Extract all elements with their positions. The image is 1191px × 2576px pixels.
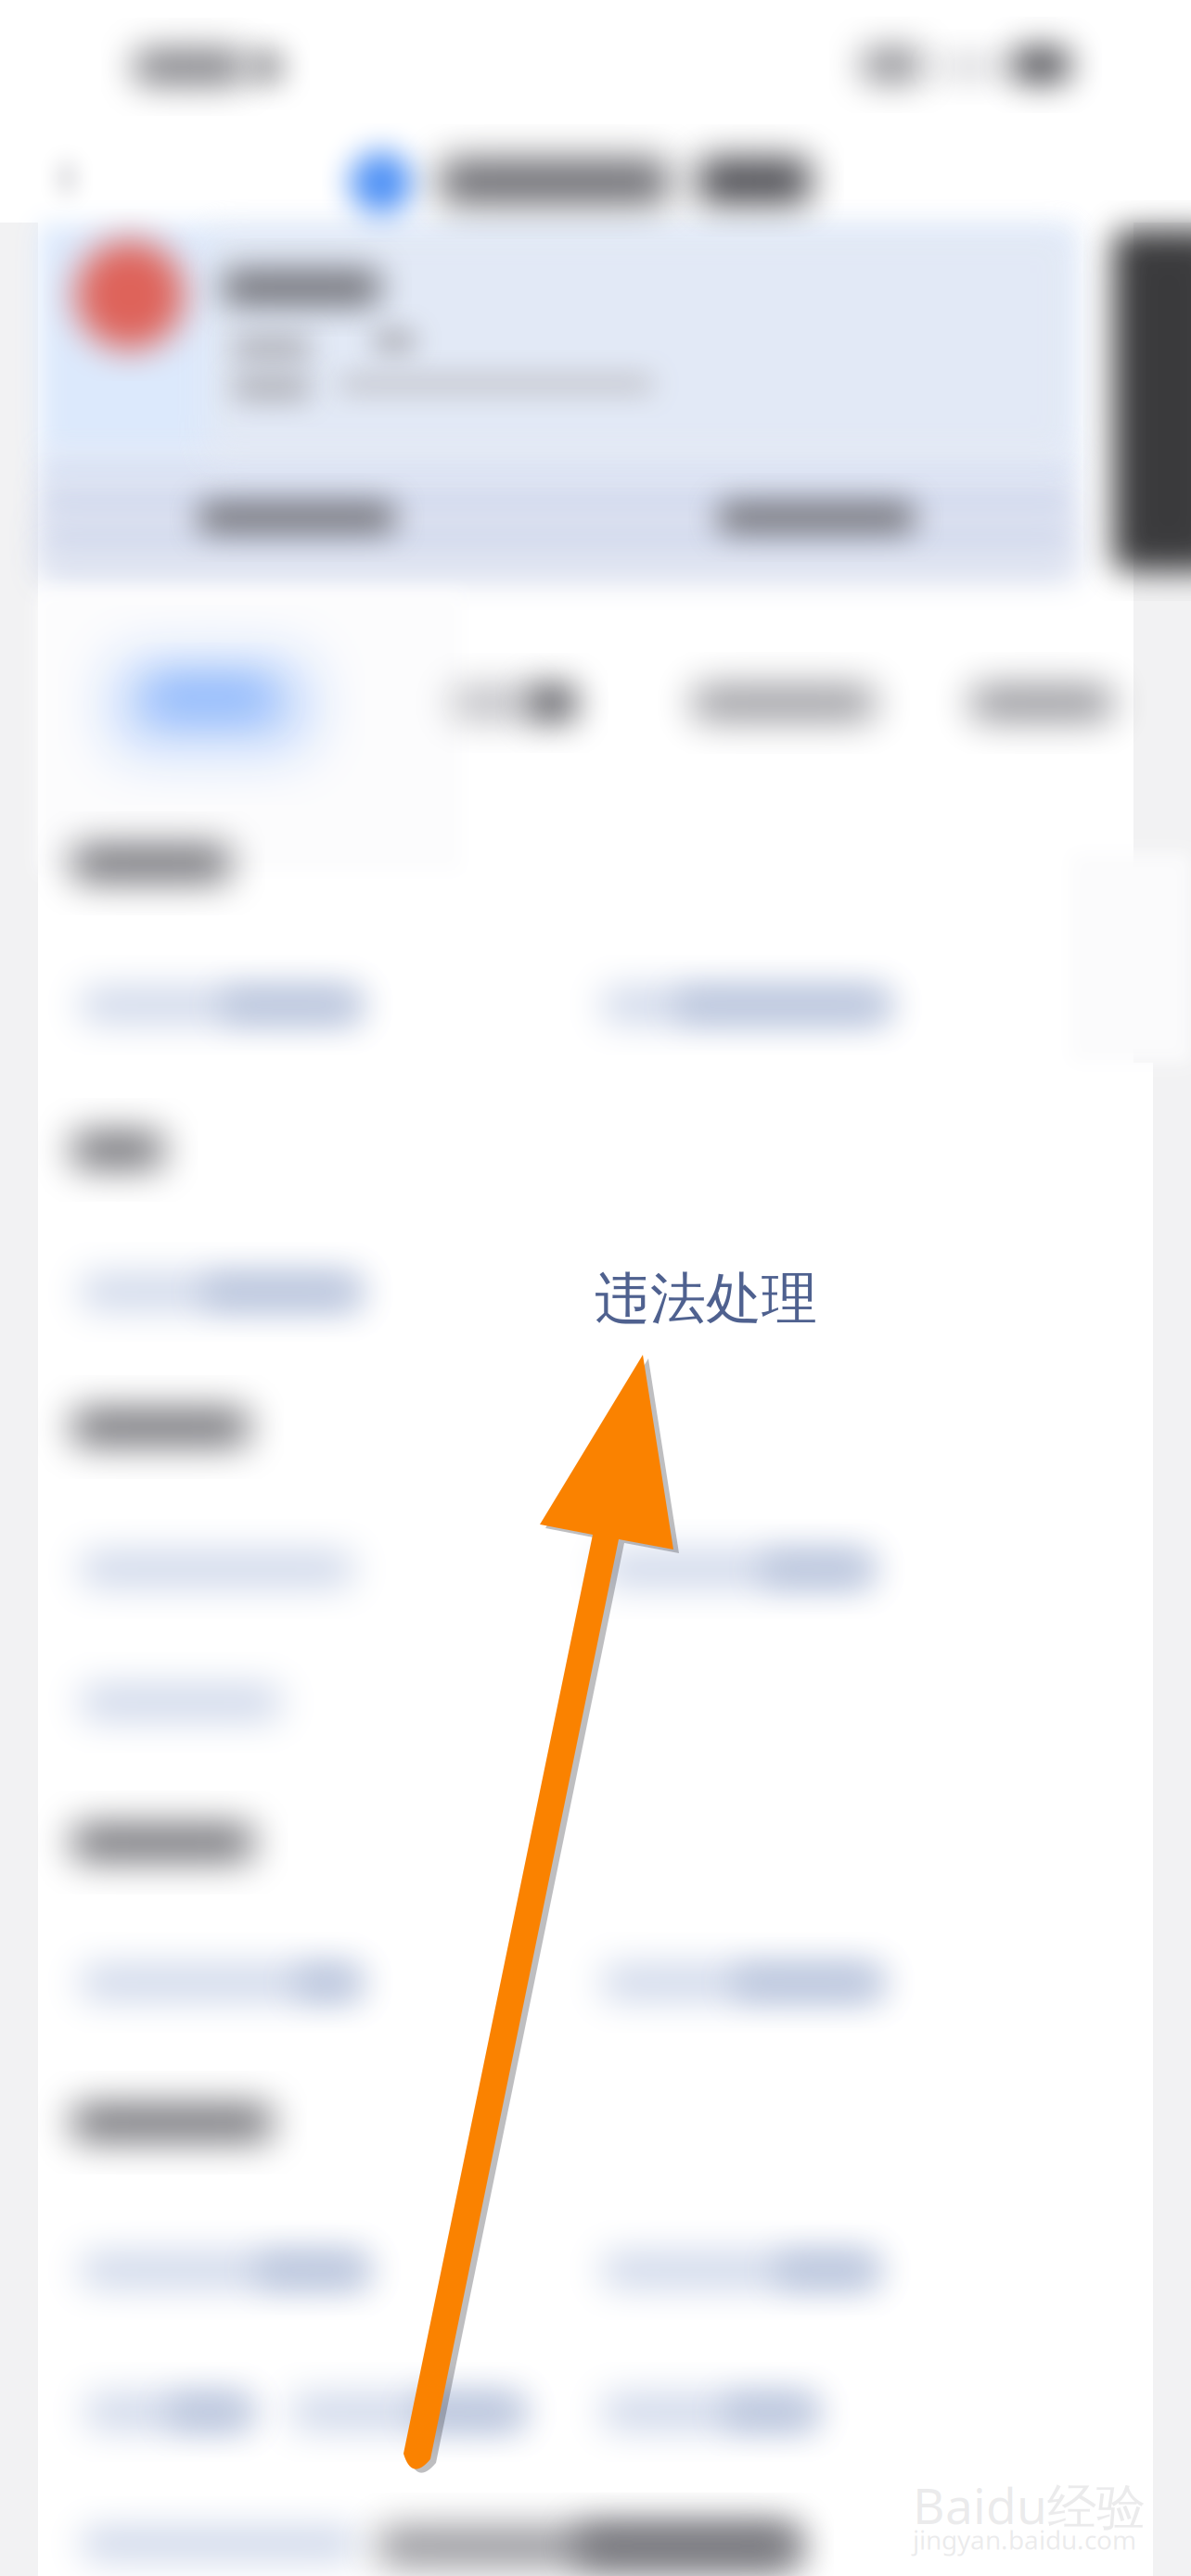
button[interactable] xyxy=(584,959,907,1052)
staticText: Baidu经验 xyxy=(913,2472,1146,2538)
button[interactable] xyxy=(584,1936,900,2029)
button[interactable] xyxy=(63,2224,386,2316)
button[interactable] xyxy=(45,584,378,825)
button[interactable] xyxy=(584,2366,835,2458)
button[interactable] xyxy=(649,619,918,786)
button[interactable] xyxy=(63,1656,299,1749)
staticText: 违法处理 xyxy=(595,1265,817,1333)
button[interactable] xyxy=(68,2366,270,2458)
button[interactable] xyxy=(916,619,1167,786)
button[interactable] xyxy=(93,457,501,578)
button[interactable] xyxy=(63,1936,378,2029)
staticText: jingyan.baidu.com xyxy=(913,2522,1136,2557)
button[interactable] xyxy=(394,619,654,786)
button[interactable] xyxy=(63,1523,371,1615)
button[interactable] xyxy=(584,2224,896,2316)
button[interactable]: Back xyxy=(0,122,121,234)
button[interactable] xyxy=(63,1245,378,1338)
button[interactable] xyxy=(584,1523,890,1615)
button[interactable] xyxy=(273,2366,542,2458)
button[interactable] xyxy=(612,457,1020,578)
button[interactable] xyxy=(63,959,378,1052)
